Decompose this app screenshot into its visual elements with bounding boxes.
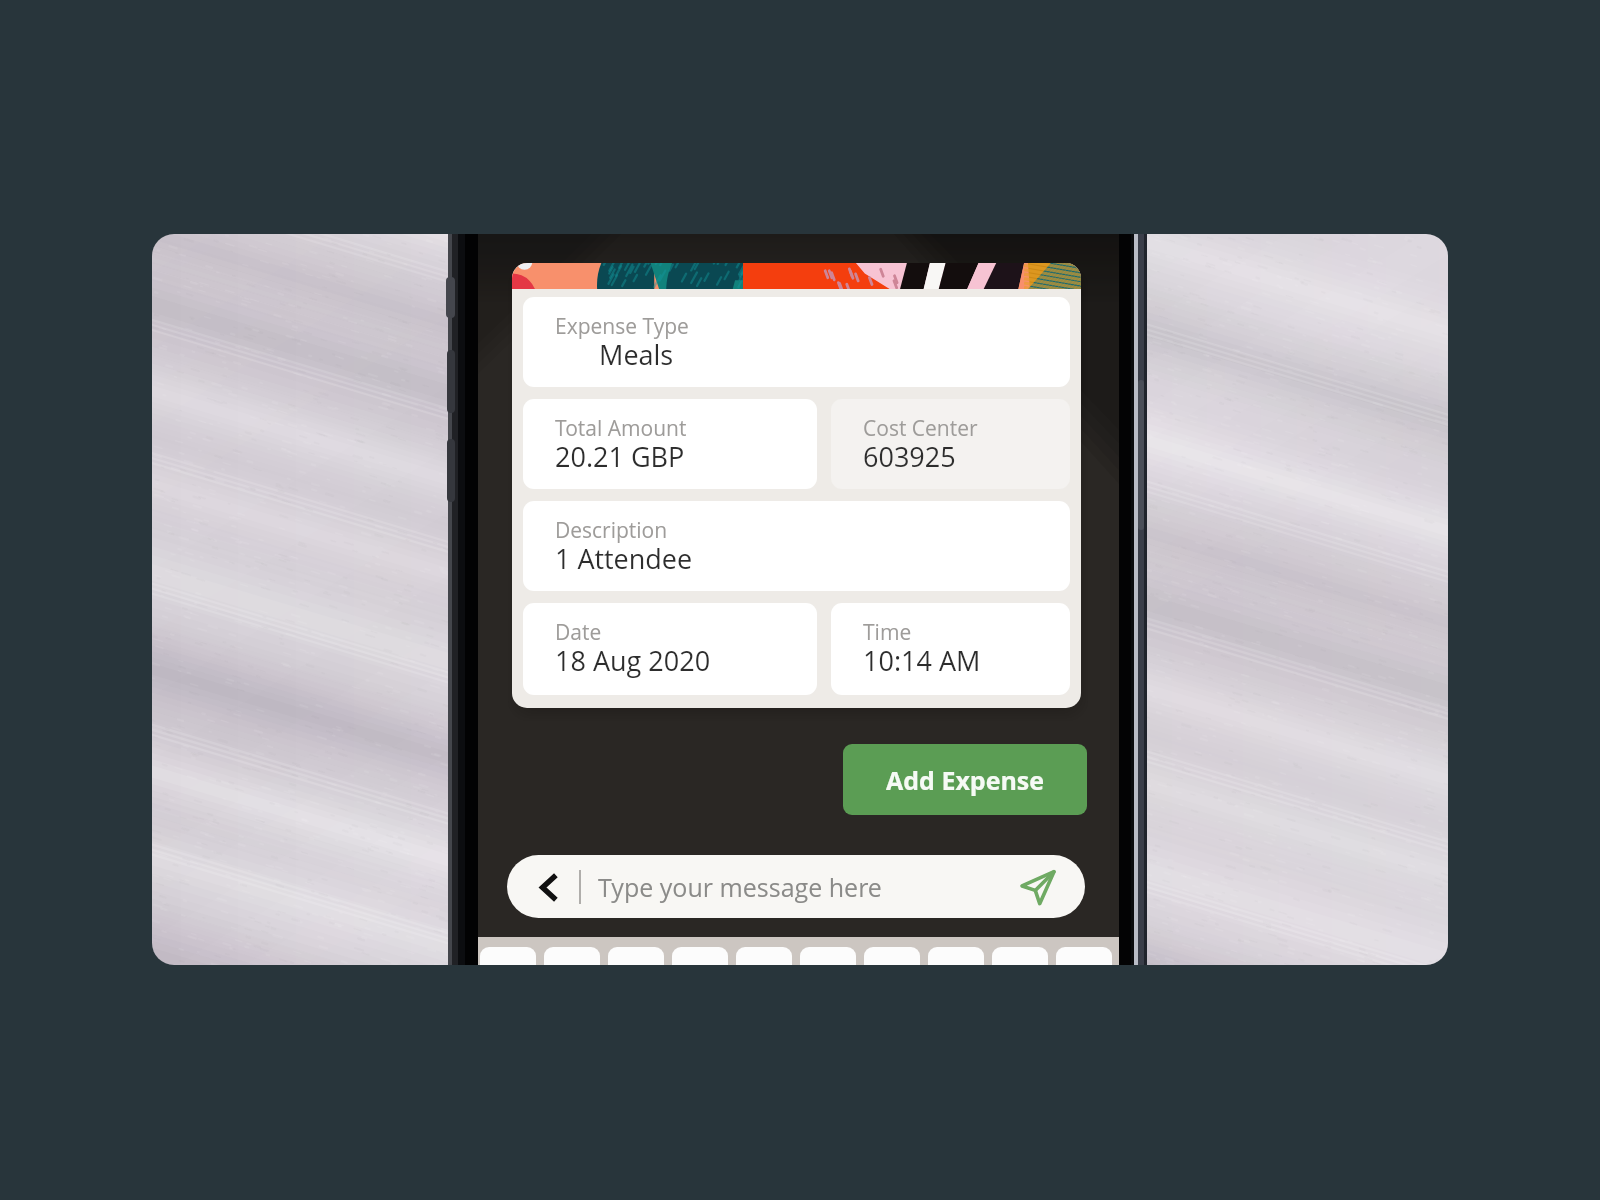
button[interactable]: Cost Center	[831, 399, 1070, 489]
button[interactable]: Back	[531, 869, 567, 905]
staticText: 10:14 AM	[863, 642, 981, 679]
staticText: 20.21 GBP	[555, 438, 685, 475]
staticText: Type your message here	[598, 870, 882, 904]
staticText: 603925	[863, 438, 956, 475]
staticText: Date	[555, 618, 602, 647]
staticText: Meals	[599, 336, 674, 373]
staticText: Description	[555, 516, 668, 545]
button[interactable]: Expense Type	[523, 297, 1070, 387]
staticText: Add Expense	[886, 763, 1045, 797]
staticText: 1 Attendee	[555, 540, 693, 577]
staticText: Expense Type	[555, 312, 689, 341]
button[interactable]: Total Amount	[523, 399, 817, 489]
button[interactable]: Description	[523, 501, 1070, 591]
staticText: Time	[863, 618, 912, 647]
button[interactable]: Send	[1017, 866, 1059, 908]
staticText: 18 Aug 2020	[555, 642, 711, 679]
button[interactable]: Add Expense	[843, 744, 1087, 815]
staticText: Cost Center	[863, 414, 978, 443]
button[interactable]: Time	[831, 603, 1070, 695]
button[interactable]: Date	[523, 603, 817, 695]
staticText: Total Amount	[555, 414, 687, 443]
